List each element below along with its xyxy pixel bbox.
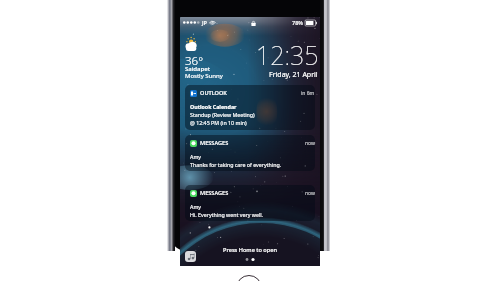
staticText: Press Home to open	[223, 246, 277, 254]
staticText: JP	[202, 19, 207, 26]
staticText: MESSAGES	[200, 189, 229, 197]
staticText: Amy	[190, 203, 202, 210]
staticText: Standup (Review Meeting)	[190, 111, 255, 118]
staticText: Outlook Calendar	[190, 103, 237, 110]
staticText: Friday, 21 April	[269, 70, 318, 80]
staticText: now	[305, 140, 315, 147]
staticText: MESSAGES	[200, 139, 229, 147]
staticText: Mostly Sunny	[185, 72, 223, 80]
button[interactable]: Music	[185, 251, 196, 262]
staticText: Thanks for taking care of everything.	[190, 161, 282, 168]
staticText: 78%	[292, 19, 303, 26]
button[interactable]: OUTLOOK	[185, 85, 315, 130]
staticText: @ 12:45 PM (in 10 min)	[190, 119, 247, 126]
staticText: Hi. Everything went very well.	[190, 211, 264, 218]
staticText: OUTLOOK	[200, 89, 227, 97]
staticText: 12:35	[256, 38, 319, 72]
button[interactable]: MESSAGES	[185, 185, 315, 221]
button[interactable]: MESSAGES	[185, 135, 315, 171]
staticText: now	[305, 190, 315, 197]
staticText: 36°	[185, 53, 204, 69]
staticText: in 6m	[301, 90, 315, 97]
staticText: Saidapet	[185, 65, 210, 73]
staticText: Amy	[190, 153, 202, 160]
